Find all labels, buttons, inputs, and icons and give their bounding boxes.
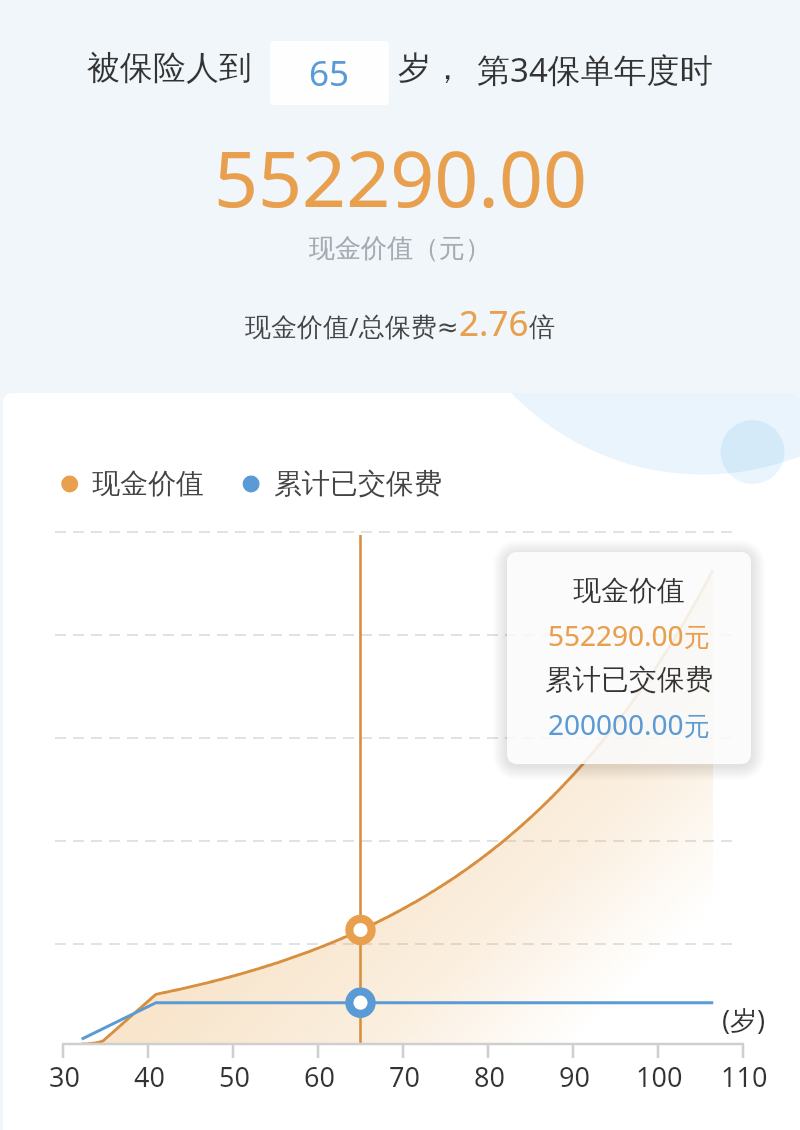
staticText: 552290.00 xyxy=(548,616,684,654)
staticText: 30 xyxy=(49,1058,80,1095)
staticText: 累计已交保费 xyxy=(545,662,713,697)
staticText: 200000.00 xyxy=(548,705,684,743)
staticText: 被保险人到 xyxy=(87,47,252,89)
staticText: 60 xyxy=(304,1058,335,1095)
staticText: 2.76 xyxy=(459,299,529,347)
staticText: 90 xyxy=(559,1058,590,1095)
staticText: 50 xyxy=(219,1058,250,1095)
button[interactable]: 现金价值 xyxy=(507,552,751,764)
staticText: 110 xyxy=(721,1058,768,1095)
staticText: 现金价值 xyxy=(573,573,685,608)
staticText: 65 xyxy=(309,49,350,97)
staticText: 元 xyxy=(684,621,710,654)
staticText: 80 xyxy=(474,1058,505,1095)
staticText: 累计已交保费 xyxy=(274,466,442,501)
staticText: 现金价值（元） xyxy=(309,232,491,265)
button[interactable]: 65 xyxy=(270,41,389,105)
staticText: 40 xyxy=(134,1058,165,1095)
staticText: 元 xyxy=(684,710,710,743)
staticText: 70 xyxy=(389,1058,420,1095)
staticText: 倍 xyxy=(529,311,555,344)
staticText: 岁， xyxy=(398,47,464,89)
button[interactable]: 累计已交保费 xyxy=(274,466,442,501)
staticText: (岁) xyxy=(722,1001,766,1038)
staticText: 552290.00 xyxy=(214,125,587,230)
staticText: 现金价值 xyxy=(92,466,204,501)
staticText: 现金价值/总保费≈ xyxy=(245,308,459,344)
staticText: 第34保单年度时 xyxy=(477,47,713,92)
button[interactable]: 现金价值 xyxy=(92,466,204,501)
staticText: 100 xyxy=(636,1058,683,1095)
